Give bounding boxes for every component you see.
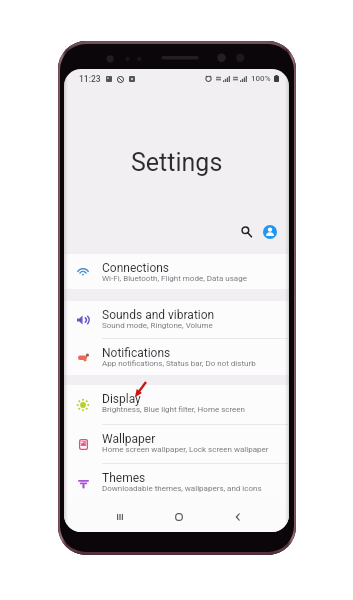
button[interactable]: Wallpaper: [64, 425, 289, 463]
button[interactable]: Account: [263, 225, 277, 239]
button[interactable]: Notifications: [64, 339, 289, 375]
staticText: Home screen wallpaper, Lock screen wallp…: [102, 445, 269, 454]
button[interactable]: Home: [168, 506, 190, 528]
button[interactable]: Display: [64, 385, 289, 424]
button[interactable]: Back: [227, 506, 249, 528]
staticText: Sounds and vibration: [102, 308, 215, 322]
staticText: Connections: [102, 261, 170, 275]
button[interactable]: Themes: [64, 464, 289, 502]
staticText: Notifications: [102, 346, 171, 360]
staticText: Wi-Fi, Bluetooth, Flight mode, Data usag…: [102, 274, 247, 283]
button[interactable]: Sounds and vibration: [64, 301, 289, 338]
staticText: Downloadable themes, wallpapers, and ico…: [102, 484, 262, 493]
staticText: Wallpaper: [102, 432, 156, 446]
staticText: Themes: [102, 471, 146, 485]
staticText: Display: [102, 392, 141, 406]
staticText: 100%: [251, 74, 271, 83]
staticText: Settings: [131, 148, 223, 177]
button[interactable]: Search: [237, 222, 256, 241]
staticText: 11:23: [79, 74, 101, 84]
button[interactable]: Connections: [64, 254, 289, 289]
button[interactable]: Recents: [109, 506, 131, 528]
staticText: Sound mode, Ringtone, Volume: [102, 321, 213, 330]
staticText: Brightness, Blue light filter, Home scre…: [102, 405, 245, 414]
staticText: App notifications, Status bar, Do not di…: [102, 359, 256, 368]
